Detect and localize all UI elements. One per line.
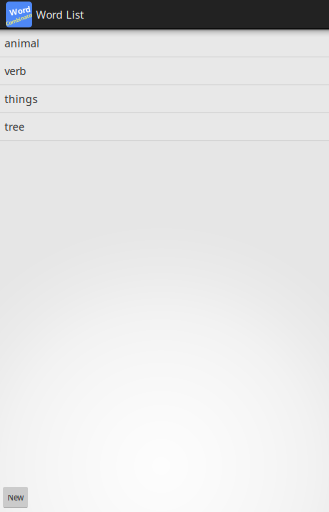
staticText: Word xyxy=(9,5,30,16)
button[interactable]: animal xyxy=(0,30,329,57)
staticText: tree xyxy=(4,120,24,134)
staticText: Word List xyxy=(36,7,84,22)
button[interactable]: things xyxy=(0,85,329,112)
staticText: New xyxy=(7,492,23,503)
staticText: verb xyxy=(4,64,26,78)
staticText: animal xyxy=(4,36,39,50)
button[interactable]: New xyxy=(3,487,28,508)
staticText: Combinator xyxy=(5,16,34,23)
staticText: things xyxy=(4,92,37,106)
button[interactable]: verb xyxy=(0,57,329,84)
button[interactable]: tree xyxy=(0,113,329,140)
